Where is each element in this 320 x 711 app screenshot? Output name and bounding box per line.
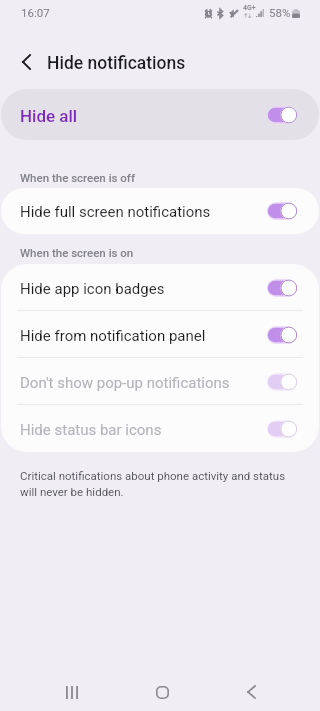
staticText: Hide full screen notifications: [20, 203, 211, 221]
staticText: 4G+: [243, 4, 256, 12]
staticText: Hide status bar icons: [20, 421, 162, 439]
button[interactable]: Back: [231, 672, 271, 711]
staticText: Critical notifications about phone activ…: [20, 469, 302, 499]
staticText: 58%: [269, 6, 291, 19]
staticText: Hide app icon badges: [20, 280, 165, 298]
staticText: Hide notifications: [47, 53, 186, 74]
button[interactable]: Hide all: [1, 89, 319, 140]
button[interactable]: Home: [142, 672, 182, 711]
button[interactable]: Hide full screen notifications: [1, 188, 319, 234]
button[interactable]: Hide app icon badges: [1, 264, 319, 311]
button[interactable]: Don't show pop-up notifications: [1, 358, 319, 405]
staticText: Don't show pop-up notifications: [20, 374, 230, 392]
button[interactable]: Navigate up: [6, 42, 46, 82]
staticText: Hide all: [20, 106, 78, 126]
button[interactable]: Hide from notification panel: [1, 311, 319, 358]
staticText: When the screen is off: [20, 171, 135, 184]
staticText: 16:07: [21, 6, 50, 19]
staticText: Hide from notification panel: [20, 327, 206, 345]
staticText: When the screen is on: [20, 246, 134, 259]
button[interactable]: Hide status bar icons: [1, 405, 319, 452]
button[interactable]: Recent apps: [52, 672, 92, 711]
